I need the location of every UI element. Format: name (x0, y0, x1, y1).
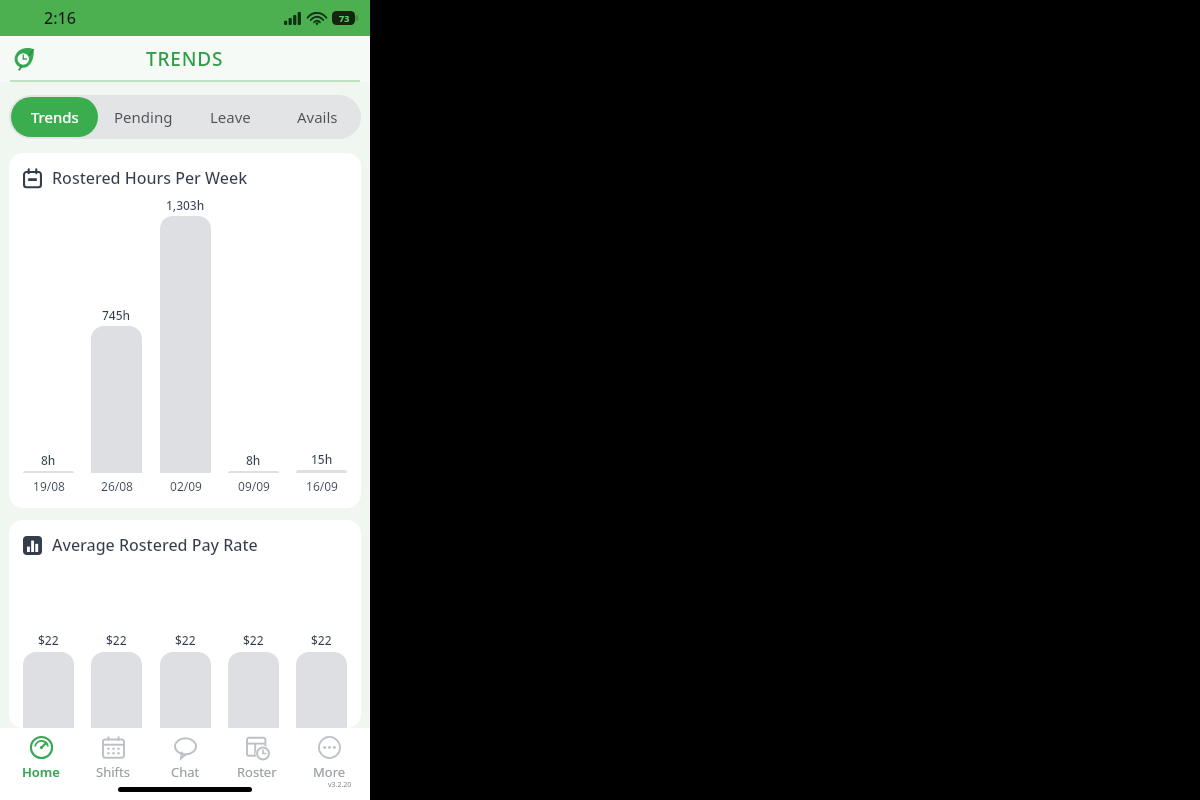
staticText: 745h (102, 307, 131, 323)
button[interactable]: Average Rostered Pay Rate (9, 520, 361, 728)
staticText: 16/09 (306, 478, 338, 494)
staticText: $22 (311, 632, 332, 648)
button[interactable]: Rostered Hours Per Week (9, 153, 361, 508)
staticText: $22 (38, 632, 59, 648)
staticText: Chat (171, 763, 200, 781)
staticText: $22 (175, 632, 196, 648)
staticText: Leave (210, 107, 251, 127)
staticText: 09/09 (238, 478, 270, 494)
staticText: Rostered Hours Per Week (52, 167, 248, 189)
button[interactable]: Trends (11, 97, 98, 137)
staticText: 26/08 (101, 478, 133, 494)
button[interactable]: More (298, 732, 360, 781)
staticText: 73 (339, 12, 350, 24)
button[interactable]: Home (10, 732, 72, 781)
staticText: 8h (246, 452, 261, 468)
staticText: Average Rostered Pay Rate (52, 534, 258, 556)
staticText: $22 (106, 632, 127, 648)
staticText: 15h (311, 451, 333, 467)
staticText: v3.2.20 (328, 780, 352, 790)
button[interactable]: App logo (10, 45, 38, 73)
button[interactable]: Leave (189, 97, 272, 137)
staticText: Pending (114, 107, 173, 127)
staticText: 19/08 (33, 478, 65, 494)
staticText: 1,303h (166, 197, 205, 213)
staticText: Shifts (96, 763, 130, 781)
button[interactable]: Roster (226, 732, 288, 781)
staticText: TRENDS (146, 46, 224, 72)
button[interactable]: Shifts (82, 732, 144, 781)
button[interactable]: Chat (154, 732, 216, 781)
staticText: Avails (297, 107, 338, 127)
staticText: Trends (31, 107, 79, 127)
staticText: Roster (237, 763, 277, 781)
staticText: $22 (243, 632, 264, 648)
staticText: 2:16 (44, 7, 76, 29)
staticText: 8h (41, 452, 56, 468)
staticText: Home (22, 763, 60, 781)
staticText: 02/09 (170, 478, 202, 494)
staticText: More (313, 763, 346, 781)
button[interactable]: Avails (276, 97, 359, 137)
button[interactable]: Pending (102, 97, 185, 137)
